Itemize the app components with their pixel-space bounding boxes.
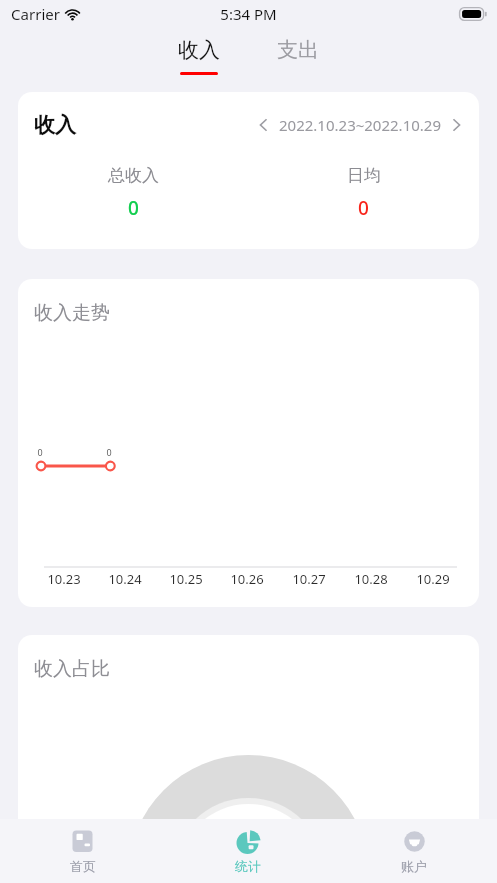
staticText: 首页: [70, 858, 96, 874]
staticText: 0: [37, 446, 43, 458]
button[interactable]: Previous period: [251, 112, 277, 138]
staticText: 10.26: [230, 570, 264, 588]
button[interactable]: 支出: [259, 28, 337, 63]
staticText: 日均: [347, 165, 381, 186]
staticText: 5:34 PM: [220, 4, 277, 24]
staticText: 总收入: [108, 165, 159, 186]
staticText: 账户: [401, 858, 427, 874]
button[interactable]: 首页: [0, 819, 165, 883]
button[interactable]: 收入: [160, 28, 238, 75]
staticText: 10.27: [292, 570, 326, 588]
staticText: 10.23: [47, 570, 81, 588]
staticText: 10.28: [354, 570, 388, 588]
staticText: 收入占比: [34, 657, 110, 681]
staticText: 收入走势: [34, 301, 110, 325]
staticText: 0: [358, 195, 369, 221]
button[interactable]: 账户: [331, 819, 497, 883]
staticText: 收入: [178, 37, 220, 63]
staticText: 2022.10.23~2022.10.29: [279, 115, 441, 135]
staticText: 支出: [277, 37, 319, 63]
staticText: 0: [128, 195, 139, 221]
staticText: 10.25: [169, 570, 203, 588]
button[interactable]: Next period: [443, 112, 469, 138]
staticText: 收入: [34, 112, 76, 138]
staticText: 0: [106, 446, 112, 458]
button[interactable]: 统计: [165, 819, 331, 883]
staticText: 统计: [235, 858, 261, 874]
staticText: 10.24: [108, 570, 142, 588]
staticText: 10.29: [416, 570, 450, 588]
staticText: Carrier: [11, 4, 60, 24]
